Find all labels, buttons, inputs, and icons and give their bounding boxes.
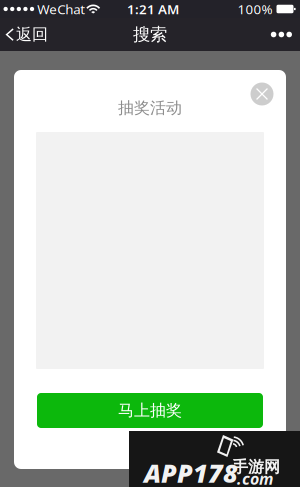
staticText: 1:21 AM (127, 0, 179, 18)
button[interactable]: More (259, 18, 300, 51)
button[interactable]: 返回 (0, 18, 56, 51)
staticText: 手游网 (232, 457, 280, 477)
staticText: WeChat (37, 0, 85, 18)
staticText: 搜索 (133, 24, 167, 45)
staticText: 马上抽奖 (118, 401, 182, 420)
button[interactable]: 马上抽奖 (37, 393, 263, 428)
button[interactable]: Close (250, 82, 273, 105)
staticText: 返回 (16, 25, 48, 44)
staticText: 100% (237, 0, 272, 18)
staticText: APP178 (144, 456, 238, 487)
staticText: .com (237, 468, 273, 487)
staticText: 抽奖活动 (118, 98, 182, 116)
